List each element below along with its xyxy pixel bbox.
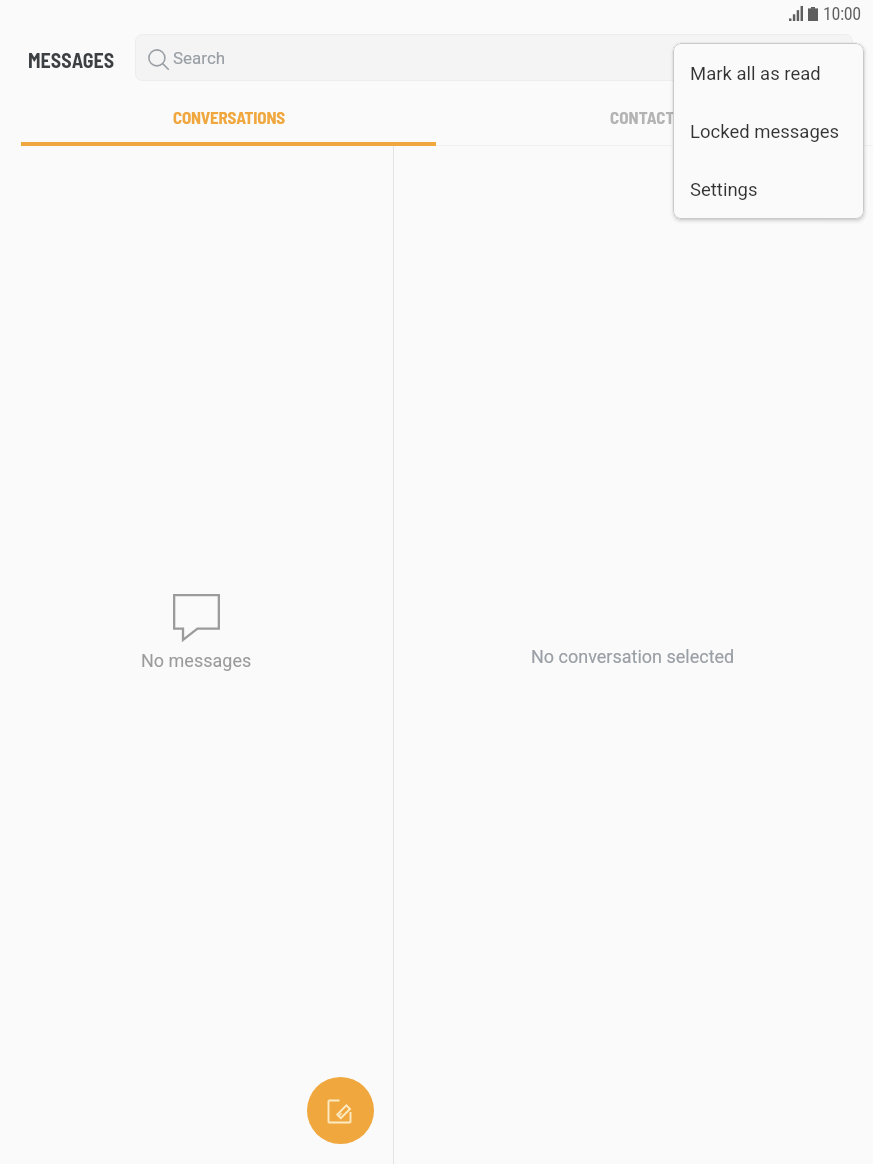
button[interactable]: Compose new message <box>307 1077 374 1144</box>
button[interactable]: MESSAGES <box>28 48 115 78</box>
button[interactable]: CONTACTS <box>436 92 852 142</box>
staticText: Locked messages <box>690 121 840 143</box>
button[interactable]: Mark all as read <box>673 43 864 101</box>
button[interactable]: Search <box>135 34 853 81</box>
staticText: Settings <box>690 179 758 201</box>
staticText: Search <box>173 48 226 68</box>
staticText: No conversation selected <box>531 646 735 667</box>
staticText: CONVERSATIONS <box>173 107 285 127</box>
staticText: 10:00 <box>823 3 861 24</box>
staticText: CONTACTS <box>610 107 684 127</box>
button[interactable]: Settings <box>673 159 864 217</box>
other: Signal strength <box>789 6 803 21</box>
other: Battery full <box>808 7 818 21</box>
staticText: No messages <box>141 650 252 671</box>
button[interactable]: CONVERSATIONS <box>21 92 436 142</box>
staticText: Mark all as read <box>690 63 821 85</box>
button[interactable]: Locked messages <box>673 101 864 159</box>
staticText: MESSAGES <box>28 48 115 72</box>
